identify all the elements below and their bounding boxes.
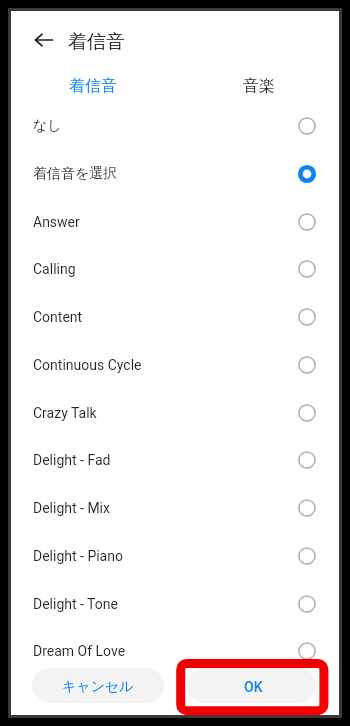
staticText: 着信音	[69, 76, 117, 96]
button[interactable]: なし	[11, 102, 339, 150]
staticText: Content	[33, 309, 83, 325]
staticText: Answer	[33, 214, 80, 230]
button[interactable]: Delight - Fad	[11, 436, 339, 484]
staticText: なし	[33, 117, 62, 135]
staticText: 音楽	[243, 76, 275, 96]
button[interactable]: OK	[187, 668, 316, 703]
staticText: Continuous Cycle	[33, 357, 142, 373]
staticText: Delight - Mix	[33, 500, 110, 516]
staticText: Delight - Fad	[33, 452, 111, 468]
button[interactable]: Continuous Cycle	[11, 341, 339, 389]
staticText: Crazy Talk	[33, 405, 97, 421]
button[interactable]: Calling	[11, 245, 339, 293]
button[interactable]: 着信音	[11, 70, 175, 102]
button[interactable]: 着信音を選択	[11, 150, 339, 198]
staticText: Dream Of Love	[33, 643, 126, 659]
button[interactable]: キャンセル	[32, 668, 164, 703]
staticText: 着信音	[68, 30, 125, 54]
staticText: 着信音を選択	[33, 165, 118, 183]
staticText: Calling	[33, 261, 76, 277]
button[interactable]: Content	[11, 293, 339, 341]
button[interactable]: Delight - Piano	[11, 532, 339, 580]
button[interactable]: Crazy Talk	[11, 389, 339, 437]
button[interactable]: 音楽	[175, 70, 339, 102]
button[interactable]: Dream Of Love	[11, 627, 339, 675]
button[interactable]: Back	[24, 20, 64, 60]
button[interactable]: Answer	[11, 198, 339, 246]
staticText: Delight - Piano	[33, 548, 123, 564]
button[interactable]: Delight - Tone	[11, 580, 339, 628]
staticText: Delight - Tone	[33, 596, 118, 612]
staticText: OK	[244, 679, 263, 695]
button[interactable]: Delight - Mix	[11, 484, 339, 532]
staticText: キャンセル	[62, 678, 134, 696]
